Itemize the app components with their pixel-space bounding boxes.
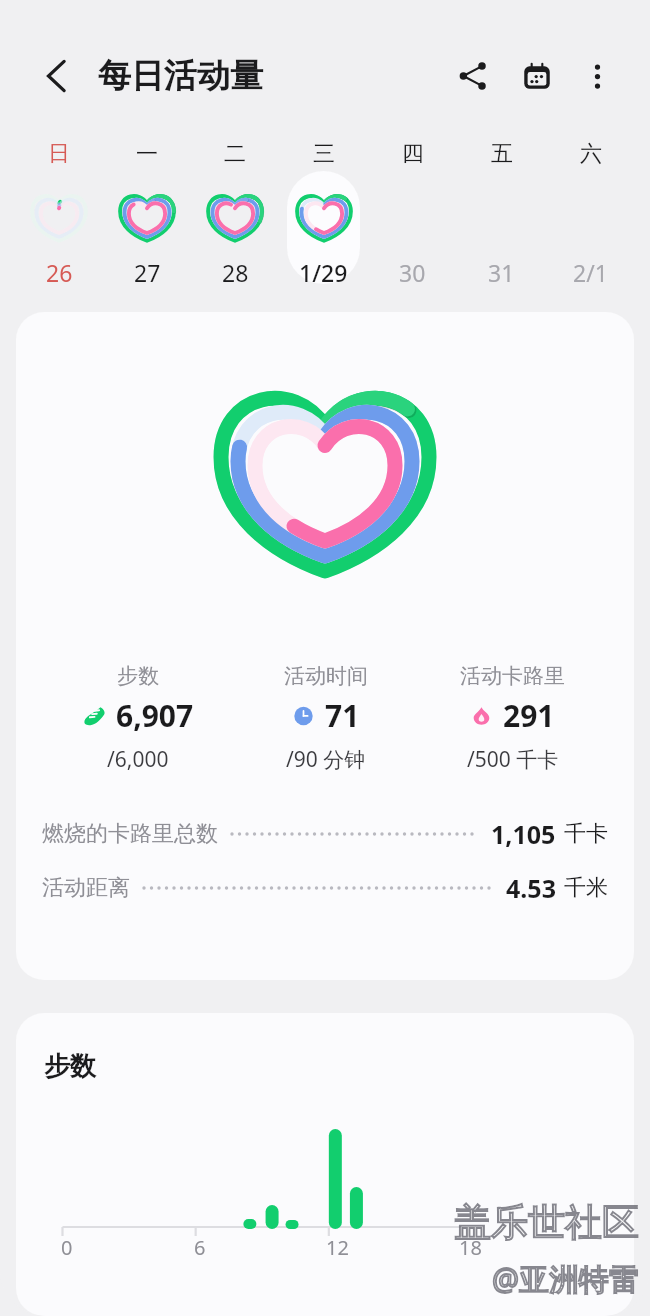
- staticText: 日: [48, 140, 70, 168]
- button[interactable]: Calendar: [511, 50, 563, 102]
- button[interactable]: Share: [447, 50, 499, 102]
- staticText: 步数: [117, 663, 159, 689]
- button[interactable]: 四: [368, 138, 457, 296]
- staticText: 26: [46, 257, 73, 288]
- staticText: /90 分钟: [286, 745, 366, 774]
- staticText: 31: [488, 257, 515, 288]
- staticText: 291: [503, 695, 555, 736]
- staticText: @亚洲特雷: [492, 1258, 639, 1299]
- button[interactable]: 日: [15, 138, 103, 296]
- staticText: 四: [402, 140, 424, 168]
- staticText: 27: [134, 257, 161, 288]
- staticText: 三: [313, 140, 335, 168]
- button[interactable]: 五: [457, 138, 546, 296]
- staticText: 2/1: [573, 257, 608, 288]
- staticText: /6,000: [107, 745, 169, 774]
- staticText: 二: [224, 140, 246, 168]
- staticText: 71: [325, 695, 360, 736]
- button[interactable]: 步数: [44, 663, 232, 774]
- button[interactable]: 活动时间: [232, 663, 419, 774]
- button[interactable]: 三: [279, 138, 368, 296]
- button[interactable]: 燃烧的卡路里总数: [42, 808, 608, 860]
- staticText: 燃烧的卡路里总数: [42, 820, 218, 848]
- staticText: 30: [399, 257, 426, 288]
- button[interactable]: Back: [32, 50, 84, 102]
- button[interactable]: 六: [546, 138, 635, 296]
- staticText: 4.53: [506, 871, 556, 905]
- staticText: 6: [194, 1234, 206, 1261]
- staticText: 六: [580, 140, 602, 168]
- button[interactable]: 活动距离: [42, 862, 608, 914]
- button[interactable]: 活动卡路里: [419, 663, 606, 774]
- staticText: 0: [61, 1234, 73, 1261]
- staticText: 6,907: [116, 695, 194, 736]
- staticText: /500 千卡: [467, 745, 559, 774]
- staticText: 一: [136, 140, 158, 168]
- staticText: 盖乐世社区: [454, 1199, 639, 1246]
- staticText: 活动时间: [284, 663, 368, 689]
- staticText: 千卡: [564, 820, 608, 848]
- staticText: 12: [326, 1234, 349, 1261]
- button[interactable]: 二: [191, 138, 279, 296]
- staticText: @亚洲特雷: [492, 1258, 639, 1299]
- staticText: 18: [459, 1234, 482, 1261]
- staticText: 每日活动量: [98, 55, 263, 97]
- staticText: 28: [222, 257, 249, 288]
- staticText: 千米: [564, 874, 608, 902]
- staticText: 活动距离: [42, 874, 130, 902]
- staticText: 1/29: [299, 257, 348, 288]
- button[interactable]: More options: [573, 52, 621, 100]
- staticText: 步数: [44, 1050, 96, 1083]
- button[interactable]: 一: [103, 138, 191, 296]
- staticText: 活动卡路里: [460, 663, 565, 689]
- staticText: 盖乐世社区: [454, 1199, 639, 1246]
- staticText: 五: [491, 140, 513, 168]
- staticText: 1,105: [491, 817, 556, 851]
